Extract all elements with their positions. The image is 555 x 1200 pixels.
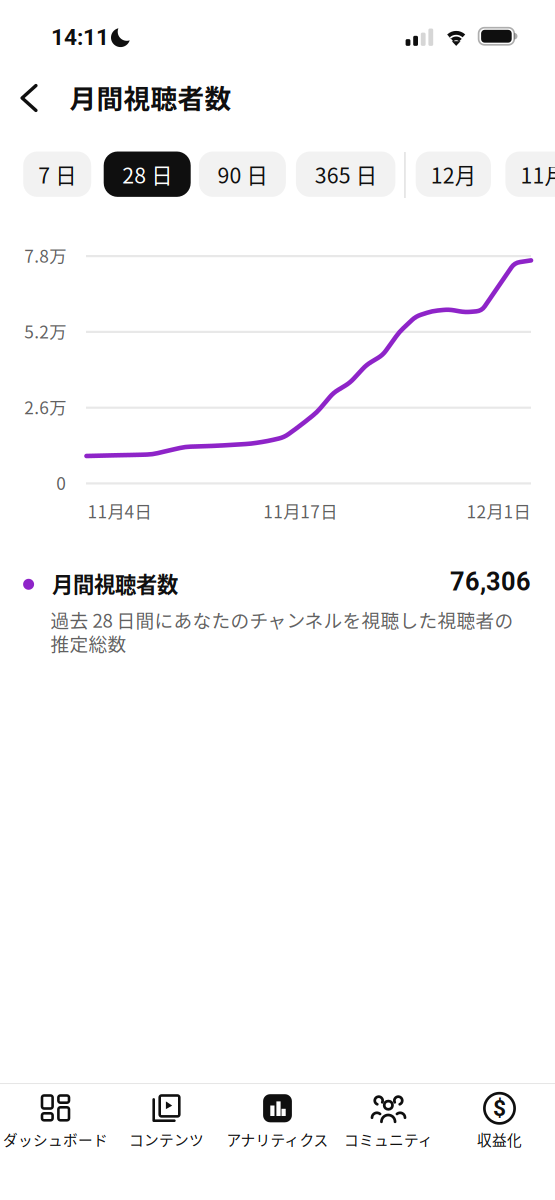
button[interactable]: コンテンツ bbox=[111, 1084, 222, 1158]
staticText: 推定総数 bbox=[50, 629, 126, 656]
button[interactable]: 90 日 bbox=[199, 151, 286, 197]
staticText: 12月1日 bbox=[466, 498, 530, 523]
button[interactable]: 12月 bbox=[416, 151, 491, 197]
staticText: 収益化 bbox=[477, 1129, 522, 1150]
staticText: 11月 bbox=[520, 159, 555, 190]
button[interactable]: コミュニティ bbox=[333, 1084, 444, 1158]
button[interactable]: $ bbox=[444, 1084, 555, 1158]
staticText: アナリティクス bbox=[226, 1129, 328, 1150]
staticText: 月間視聴者数 bbox=[52, 568, 178, 599]
staticText: 90 日 bbox=[217, 159, 267, 190]
staticText: 過去 28 日間にあなたのチャンネルを視聴した視聴者の bbox=[50, 606, 513, 633]
staticText: 28 日 bbox=[122, 159, 172, 190]
staticText: 7 日 bbox=[38, 159, 76, 190]
button[interactable]: 7 日 bbox=[23, 151, 91, 197]
staticText: コンテンツ bbox=[129, 1129, 204, 1150]
button[interactable]: ダッシュボード bbox=[0, 1084, 111, 1158]
staticText: $ bbox=[493, 1095, 506, 1122]
staticText: 2.6万 bbox=[24, 394, 66, 419]
staticText: 11月17日 bbox=[263, 498, 337, 523]
staticText: 76,306 bbox=[450, 567, 531, 597]
staticText: 11月4日 bbox=[87, 498, 151, 523]
staticText: 14:11 bbox=[51, 24, 109, 51]
staticText: 365 日 bbox=[315, 159, 377, 190]
button[interactable]: アナリティクス bbox=[222, 1084, 333, 1158]
staticText: 5.2万 bbox=[24, 318, 66, 343]
button[interactable]: 365 日 bbox=[296, 151, 395, 197]
staticText: ダッシュボード bbox=[3, 1129, 108, 1150]
button[interactable]: 戻る bbox=[6, 74, 52, 122]
button[interactable]: 11月 bbox=[505, 151, 555, 197]
staticText: 12月 bbox=[431, 159, 476, 190]
staticText: 7.8万 bbox=[24, 243, 66, 268]
button[interactable]: 28 日 bbox=[104, 151, 191, 197]
staticText: 月間視聴者数 bbox=[69, 77, 231, 116]
staticText: コミュニティ bbox=[344, 1129, 433, 1150]
staticText: 0 bbox=[56, 470, 66, 495]
